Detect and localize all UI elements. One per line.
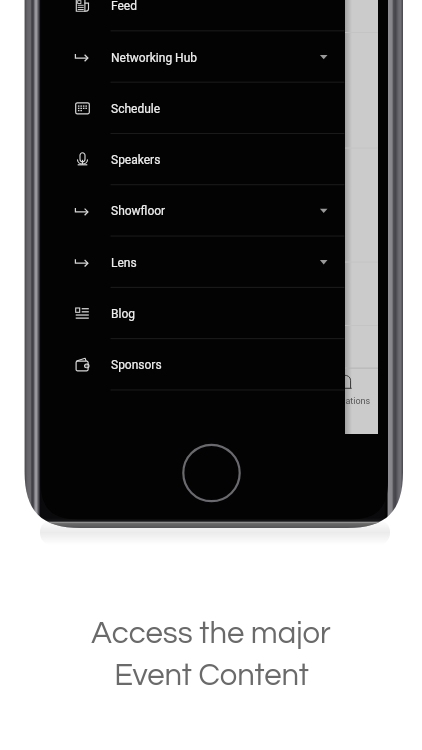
button[interactable]: Speakers [41, 134, 345, 185]
staticText: Networking Hub [111, 51, 198, 65]
button[interactable]: Showfloor [41, 185, 345, 236]
button[interactable]: Networking Hub [41, 32, 345, 83]
button[interactable]: Lens [41, 237, 345, 288]
staticText: Sponsors [111, 358, 162, 372]
button[interactable]: Notifications [345, 368, 378, 434]
button[interactable]: Feed [41, 0, 345, 31]
staticText: Feed [111, 0, 138, 13]
button[interactable]: Blog [41, 288, 345, 339]
staticText: Blog [111, 307, 135, 321]
staticText: Event Content [114, 660, 309, 692]
staticText: Schedule [111, 102, 161, 116]
staticText: Showfloor [111, 204, 166, 218]
staticText: Lens [111, 256, 137, 270]
staticText: Access the major [91, 618, 331, 650]
staticText: Speakers [111, 153, 161, 167]
staticText: Notifications [345, 396, 371, 407]
button[interactable]: Schedule [41, 83, 345, 134]
button[interactable]: Sponsors [41, 339, 345, 390]
